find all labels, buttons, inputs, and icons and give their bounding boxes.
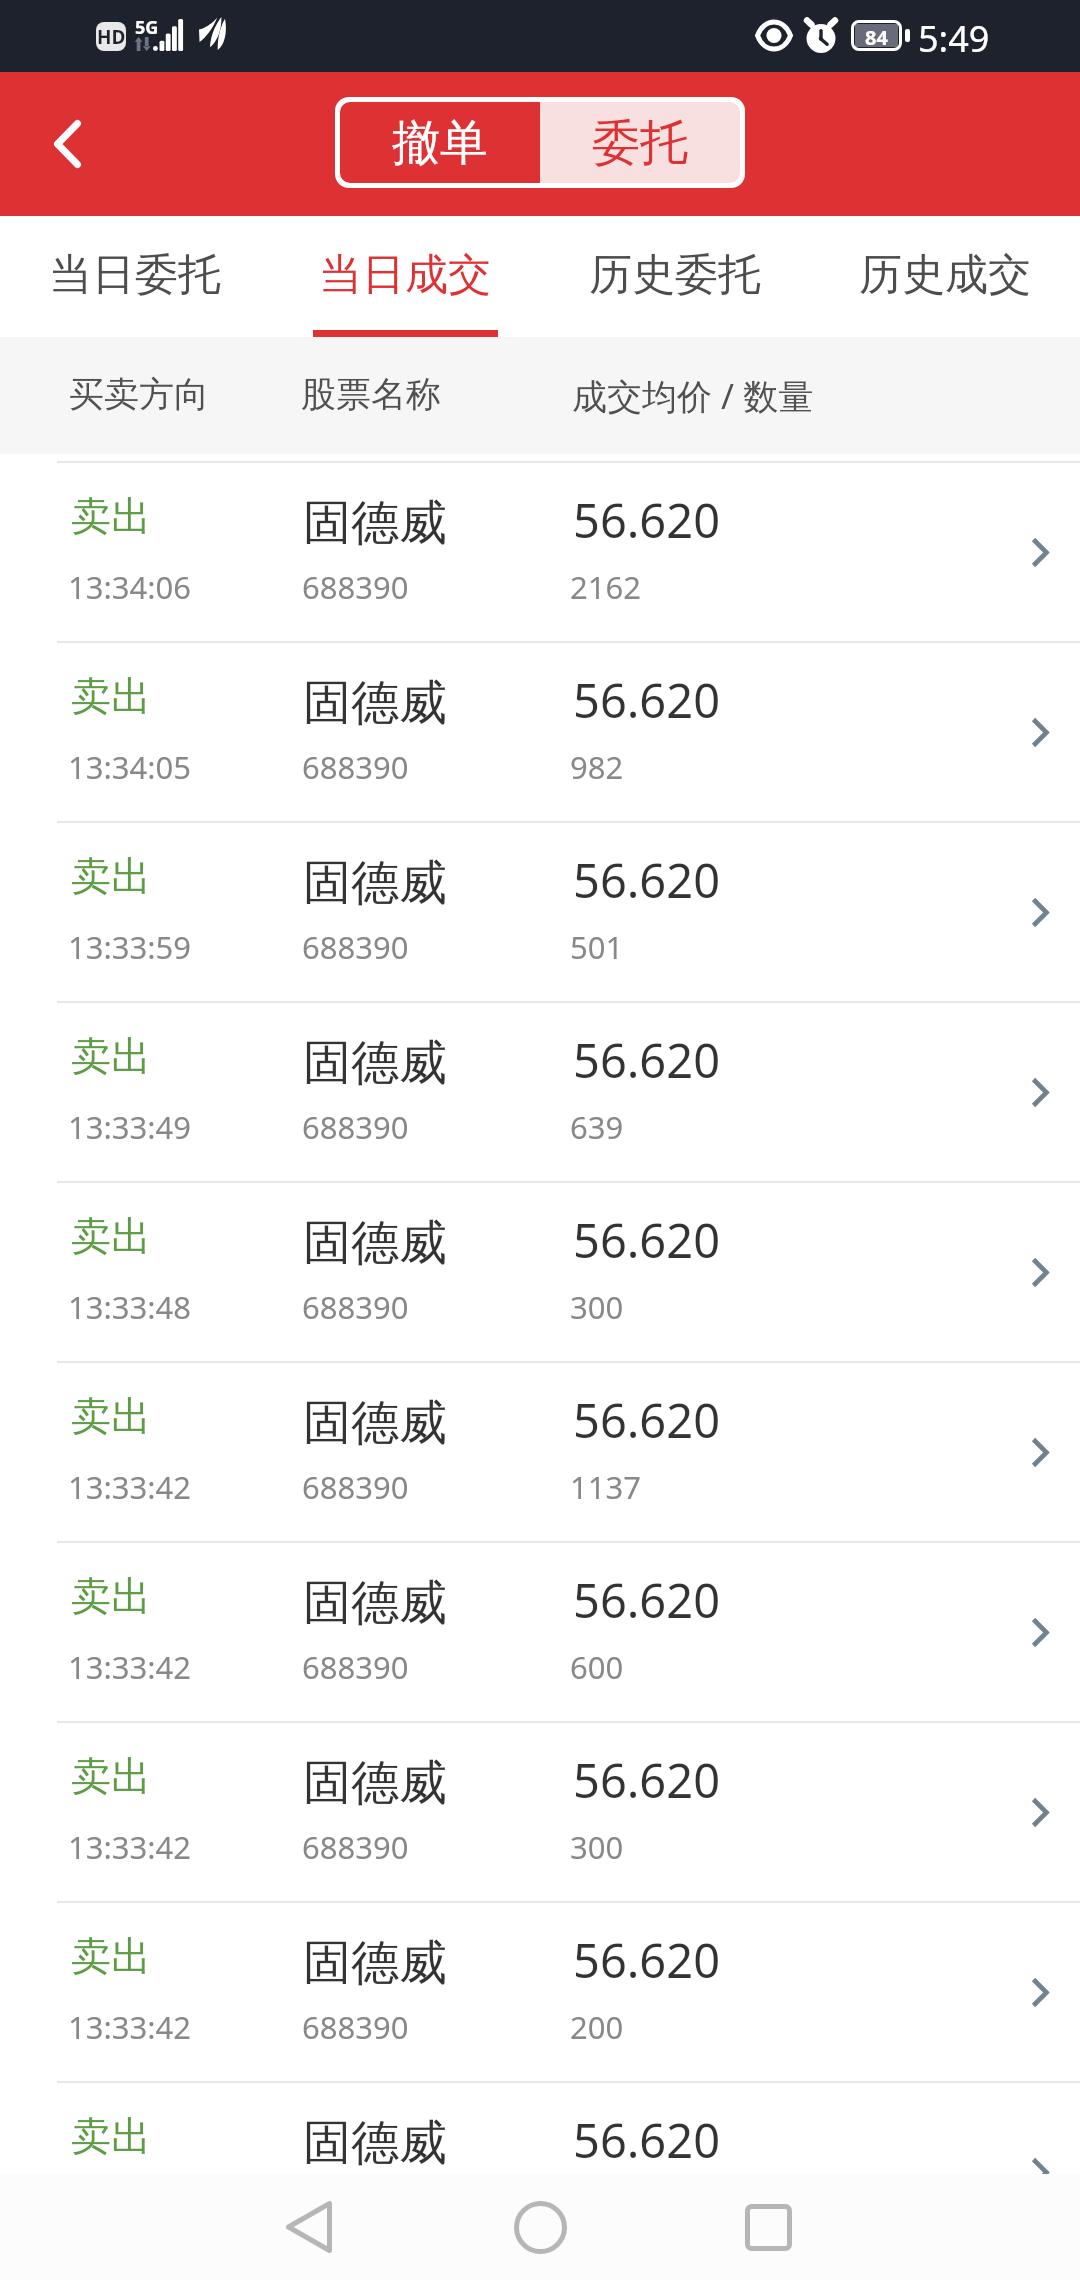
button[interactable]: 卖出 — [0, 814, 1080, 994]
other: Details — [1031, 2157, 1049, 2174]
other: Details — [1031, 1257, 1049, 1288]
staticText: 股票名称 — [301, 372, 441, 416]
staticText: 13:33:49 — [68, 1106, 192, 1148]
staticText: 13:34:06 — [68, 566, 192, 608]
staticText: 卖出 — [71, 851, 151, 901]
other: Details — [1031, 537, 1049, 568]
button[interactable]: Back — [249, 2174, 369, 2280]
staticText: 固德威 — [303, 1033, 447, 1093]
staticText: 固德威 — [303, 853, 447, 913]
staticText: 固德威 — [303, 2113, 447, 2173]
staticText: 成交均价 / 数量 — [572, 372, 814, 420]
staticText: 委托 — [592, 113, 688, 173]
other: Details — [1031, 717, 1049, 748]
staticText: 5:49 — [918, 14, 990, 63]
staticText: HD — [97, 24, 126, 50]
staticText: 卖出 — [71, 491, 151, 541]
staticText: 历史成交 — [859, 248, 1031, 302]
staticText: 卖出 — [71, 1211, 151, 1261]
button[interactable]: Back — [24, 101, 110, 187]
other: Details — [1031, 1437, 1049, 1468]
other: Details — [1031, 897, 1049, 928]
staticText: 历史委托 — [589, 248, 761, 302]
button[interactable]: 历史成交 — [810, 216, 1080, 337]
staticText: 当日委托 — [49, 248, 221, 302]
staticText: 56.620 — [573, 1388, 721, 1452]
staticText: 200 — [570, 2006, 624, 2048]
button[interactable]: 当日成交 — [270, 216, 540, 337]
staticText: 当日成交 — [319, 248, 491, 302]
staticText: 56.620 — [573, 1928, 721, 1992]
staticText: 2162 — [570, 566, 641, 608]
staticText: 13:33:42 — [68, 1826, 192, 1868]
staticText: 1137 — [570, 1466, 641, 1508]
staticText: 688390 — [302, 1286, 409, 1328]
staticText: 56.620 — [573, 848, 721, 912]
staticText: 688390 — [302, 2006, 409, 2048]
staticText: 13:34:05 — [68, 746, 192, 788]
staticText: 982 — [570, 746, 624, 788]
staticText: 固德威 — [303, 1573, 447, 1633]
button[interactable]: 当日委托 — [0, 216, 270, 337]
button[interactable]: 卖出 — [0, 634, 1080, 814]
staticText: 卖出 — [71, 1751, 151, 1801]
staticText: 固德威 — [303, 1933, 447, 1993]
button[interactable]: 卖出 — [0, 994, 1080, 1174]
staticText: 5G — [135, 15, 159, 40]
button[interactable]: 卖出 — [0, 1714, 1080, 1894]
staticText: 56.620 — [573, 668, 721, 732]
staticText: 卖出 — [71, 671, 151, 721]
staticText: 56.620 — [573, 2108, 721, 2172]
staticText: 固德威 — [303, 1213, 447, 1273]
staticText: 688390 — [302, 1106, 409, 1148]
staticText: 卖出 — [71, 1571, 151, 1621]
staticText: 56.620 — [573, 1568, 721, 1632]
staticText: 卖出 — [71, 1391, 151, 1441]
staticText: 688390 — [302, 1466, 409, 1508]
staticText: 300 — [570, 1826, 624, 1868]
staticText: 300 — [570, 1286, 624, 1328]
button[interactable]: 卖出 — [0, 454, 1080, 634]
button[interactable]: 卖出 — [0, 1174, 1080, 1354]
staticText: 固德威 — [303, 1753, 447, 1813]
staticText: 撤单 — [392, 113, 488, 173]
staticText: 688390 — [302, 566, 409, 608]
other: Details — [1031, 1977, 1049, 2008]
staticText: 56.620 — [573, 1748, 721, 1812]
staticText: 买卖方向 — [69, 372, 209, 416]
staticText: 56.620 — [573, 1028, 721, 1092]
staticText: 13:33:42 — [68, 1466, 192, 1508]
other: Details — [1031, 1077, 1049, 1108]
staticText: 688390 — [302, 746, 409, 788]
button[interactable]: 卖出 — [0, 1894, 1080, 2074]
other: Details — [1031, 1617, 1049, 1648]
button[interactable]: Home — [480, 2174, 600, 2280]
staticText: 固德威 — [303, 1393, 447, 1453]
staticText: 600 — [570, 1646, 624, 1688]
button[interactable]: 卖出 — [0, 1354, 1080, 1534]
staticText: 56.620 — [573, 488, 721, 552]
other: Details — [1031, 1797, 1049, 1828]
staticText: 688390 — [302, 1646, 409, 1688]
button[interactable]: 撤单 — [340, 102, 540, 183]
button[interactable]: 历史委托 — [540, 216, 810, 337]
button[interactable]: 卖出 — [0, 1534, 1080, 1714]
staticText: 13:33:42 — [68, 2006, 192, 2048]
staticText: 56.620 — [573, 1208, 721, 1272]
staticText: 卖出 — [71, 1031, 151, 1081]
staticText: 639 — [570, 1106, 624, 1148]
staticText: 688390 — [302, 926, 409, 968]
staticText: 13:33:59 — [68, 926, 192, 968]
staticText: 13:33:48 — [68, 1286, 192, 1328]
staticText: 固德威 — [303, 673, 447, 733]
button[interactable]: 委托 — [540, 102, 740, 183]
button[interactable]: Recent apps — [708, 2174, 828, 2280]
staticText: 固德威 — [303, 493, 447, 553]
staticText: 84 — [865, 24, 888, 47]
staticText: 卖出 — [71, 2111, 151, 2161]
staticText: 卖出 — [71, 1931, 151, 1981]
staticText: 501 — [570, 926, 624, 968]
staticText: 13:33:42 — [68, 1646, 192, 1688]
button[interactable]: 卖出 — [0, 2074, 1080, 2174]
staticText: 688390 — [302, 1826, 409, 1868]
